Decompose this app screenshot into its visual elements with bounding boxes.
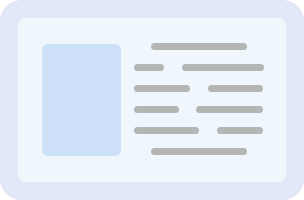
button[interactable]: Article card — [18, 18, 286, 182]
